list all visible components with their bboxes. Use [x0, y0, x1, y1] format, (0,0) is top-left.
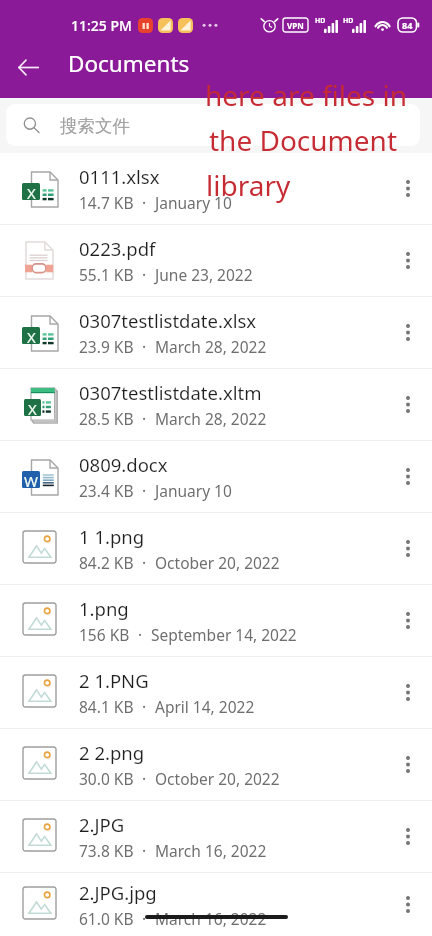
staticText: 55.1 KB [79, 264, 134, 285]
staticText: library [206, 166, 291, 204]
staticText: 14.7 KB [79, 192, 134, 213]
staticText: 2.JPG.jpg [79, 880, 157, 905]
staticText: X [27, 183, 36, 200]
button[interactable]: More options [384, 297, 432, 368]
button[interactable]: More options [384, 873, 432, 936]
button[interactable]: More options [384, 657, 432, 728]
staticText: March 16, 2022 [155, 908, 267, 929]
button[interactable]: 0223.pdf [0, 225, 432, 296]
staticText: 30.0 KB [79, 768, 134, 789]
button[interactable]: More options [384, 513, 432, 584]
staticText: Documents [68, 48, 190, 79]
button[interactable]: More options [384, 585, 432, 656]
staticText: X [27, 327, 36, 344]
button[interactable]: 1 1.png [0, 513, 432, 584]
button[interactable]: X [0, 369, 432, 440]
staticText: · [138, 624, 143, 645]
staticText: 61.0 KB [79, 908, 134, 929]
button[interactable]: More options [384, 441, 432, 512]
staticText: 0111.xlsx [79, 164, 160, 189]
staticText: 2.JPG [79, 812, 125, 837]
button[interactable]: 2 1.PNG [0, 657, 432, 728]
button[interactable]: 1.png [0, 585, 432, 656]
button[interactable]: 2.JPG.jpg [0, 873, 432, 936]
staticText: the Document [209, 121, 397, 159]
staticText: · [142, 264, 147, 285]
staticText: October 20, 2022 [155, 768, 280, 789]
staticText: September 14, 2022 [151, 624, 297, 645]
staticText: HD [343, 16, 354, 26]
staticText: 11:25 PM [71, 16, 132, 35]
staticText: 84.1 KB [79, 696, 134, 717]
button[interactable]: More options [384, 801, 432, 872]
staticText: here are files in [205, 76, 408, 114]
staticText: · [142, 336, 147, 357]
staticText: X [28, 399, 37, 416]
button[interactable]: 搜索文件 [6, 104, 420, 146]
staticText: 0307testlistdate.xlsx [79, 308, 257, 333]
staticText: · [142, 192, 147, 213]
staticText: · [142, 908, 147, 929]
button[interactable]: More options [384, 153, 432, 224]
staticText: 2 1.PNG [79, 668, 149, 693]
staticText: 84.2 KB [79, 552, 134, 573]
staticText: HD [315, 16, 326, 26]
staticText: 23.9 KB [79, 336, 134, 357]
staticText: · [142, 696, 147, 717]
staticText: March 28, 2022 [155, 408, 267, 429]
staticText: 84 [402, 19, 413, 31]
button[interactable]: X [0, 153, 432, 224]
button[interactable]: 2 2.png [0, 729, 432, 800]
staticText: April 14, 2022 [155, 696, 255, 717]
staticText: March 28, 2022 [155, 336, 267, 357]
button[interactable]: W [0, 441, 432, 512]
button[interactable]: More options [384, 225, 432, 296]
staticText: 1 1.png [79, 524, 145, 549]
staticText: January 10 [155, 192, 232, 213]
staticText: 0307testlistdate.xltm [79, 380, 262, 405]
staticText: June 23, 2022 [155, 264, 253, 285]
button[interactable]: X [0, 297, 432, 368]
staticText: 0809.docx [79, 452, 168, 477]
button[interactable]: Back [0, 40, 56, 92]
staticText: January 10 [155, 480, 232, 501]
staticText: 0223.pdf [79, 236, 156, 261]
staticText: October 20, 2022 [155, 552, 280, 573]
staticText: 2 2.png [79, 740, 145, 765]
staticText: 23.4 KB [79, 480, 134, 501]
staticText: · [142, 480, 147, 501]
staticText: 1.png [79, 596, 129, 621]
staticText: · [142, 840, 147, 861]
button[interactable]: More options [384, 369, 432, 440]
button[interactable]: More options [384, 729, 432, 800]
staticText: 搜索文件 [60, 115, 130, 137]
staticText: March 16, 2022 [155, 840, 267, 861]
staticText: 28.5 KB [79, 408, 134, 429]
staticText: · [142, 552, 147, 573]
staticText: 73.8 KB [79, 840, 134, 861]
staticText: VPN [287, 20, 304, 31]
staticText: 156 KB [79, 624, 130, 645]
staticText: · [142, 408, 147, 429]
staticText: · [142, 768, 147, 789]
button[interactable]: 2.JPG [0, 801, 432, 872]
staticText: W [24, 471, 38, 488]
